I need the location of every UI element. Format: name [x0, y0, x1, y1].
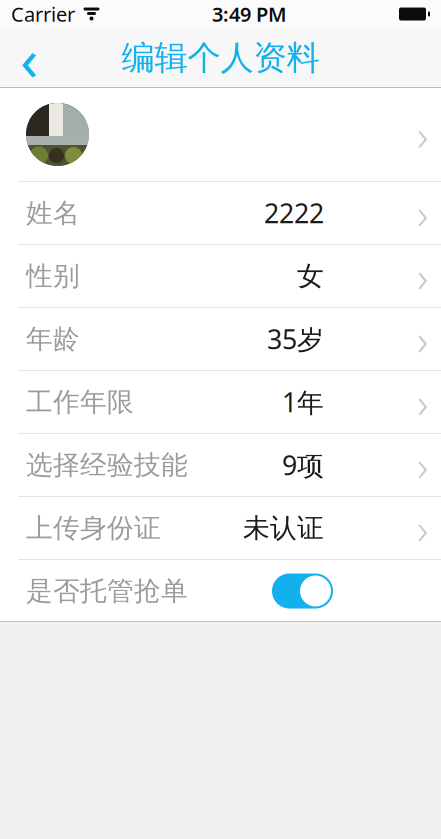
staticText: 女	[297, 260, 324, 292]
staticText: 工作年限	[26, 386, 134, 418]
staticText: ›	[417, 437, 428, 493]
staticText: ›	[417, 106, 428, 163]
staticText: Carrier	[11, 1, 75, 27]
button[interactable]: 性别	[0, 245, 441, 307]
staticText: 年龄	[26, 323, 80, 355]
button[interactable]: 工作年限	[0, 371, 441, 433]
staticText: ‹	[20, 19, 38, 97]
staticText: 3:49 PM	[212, 1, 287, 27]
staticText: 是否托管抢单	[26, 575, 188, 607]
staticText: 9项	[282, 447, 324, 483]
staticText: 2222	[264, 195, 324, 231]
staticText: 性别	[26, 260, 80, 292]
button[interactable]: 上传身份证	[0, 497, 441, 559]
staticText: 编辑个人资料	[121, 37, 319, 78]
staticText: 上传身份证	[26, 512, 161, 544]
staticText: 35岁	[267, 321, 324, 357]
staticText: 未认证	[243, 512, 324, 544]
staticText: ›	[417, 185, 428, 241]
button[interactable]: 返回	[0, 28, 58, 88]
button[interactable]: 修改头像	[0, 88, 441, 181]
staticText: ›	[417, 311, 428, 367]
button[interactable]: 姓名	[0, 182, 441, 244]
button[interactable]: 选择经验技能	[0, 434, 441, 496]
button[interactable]: 年龄	[0, 308, 441, 370]
button[interactable]: 是否托管抢单	[0, 560, 441, 622]
staticText: ›	[417, 374, 428, 430]
staticText: 姓名	[26, 197, 80, 229]
staticText: ›	[417, 500, 428, 556]
staticText: 1年	[282, 384, 324, 420]
staticText: 选择经验技能	[26, 449, 188, 481]
staticText: ›	[417, 248, 428, 304]
